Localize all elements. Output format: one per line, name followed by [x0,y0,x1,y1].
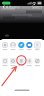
staticText: Select [31,4,41,9]
button[interactable]: Messages [17,41,25,51]
button[interactable]: Contact [9,41,17,51]
button[interactable]: Copy [1,57,9,67]
button[interactable]: AirDrop [1,41,9,51]
button[interactable]: Save to Files [17,57,25,67]
button[interactable]: Select [30,4,42,10]
button[interactable]: Print [25,57,33,67]
button[interactable]: Notes [33,41,41,51]
button[interactable]: Back to Albums [2,4,21,10]
staticText: Albums [6,4,20,9]
button[interactable]: Mail [25,41,33,51]
button[interactable]: More [33,57,41,67]
button[interactable]: Add to Album [9,57,17,67]
